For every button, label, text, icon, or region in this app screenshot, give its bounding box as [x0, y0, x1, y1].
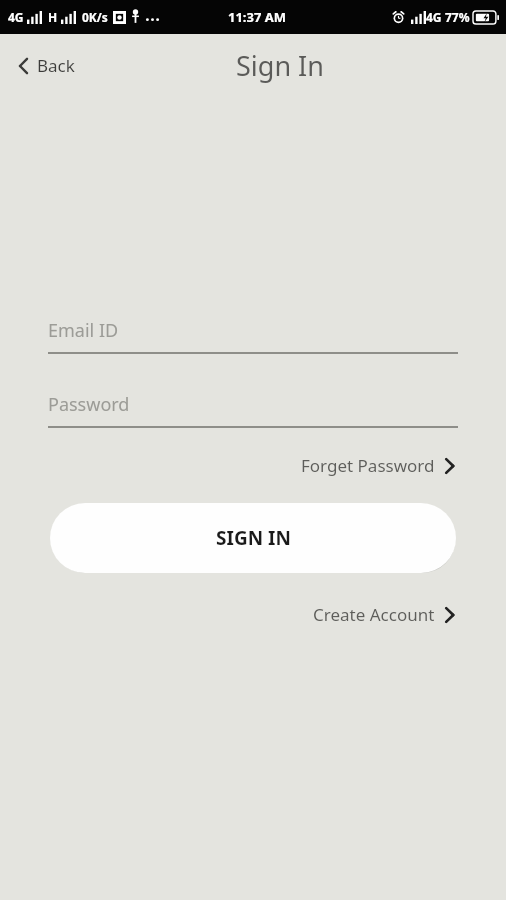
staticText: 4G: [426, 9, 442, 25]
staticText: SIGN IN: [216, 525, 291, 551]
staticText: 4G: [8, 9, 24, 25]
staticText: H: [48, 9, 58, 25]
staticText: Back: [37, 54, 75, 77]
staticText: Create Account: [313, 603, 435, 626]
button[interactable]: Forget Password: [297, 448, 459, 483]
button[interactable]: Password: [48, 392, 458, 428]
staticText: 11:37 AM: [228, 8, 287, 26]
staticText: 77%: [445, 9, 470, 25]
staticText: Sign In: [236, 47, 324, 84]
button[interactable]: Create Account: [309, 597, 459, 632]
staticText: Password: [48, 392, 130, 417]
staticText: 0K/s: [82, 9, 108, 25]
button[interactable]: Back: [12, 46, 81, 85]
button[interactable]: Email ID: [48, 318, 458, 354]
staticText: Forget Password: [301, 454, 435, 477]
staticText: Email ID: [48, 318, 119, 343]
button[interactable]: SIGN IN: [50, 503, 456, 573]
